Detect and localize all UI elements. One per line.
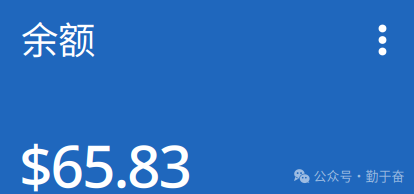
button[interactable]: More options [360,18,404,62]
staticText: 公众号·勤于奋 [313,166,404,184]
staticText: $65.83 [19,126,192,194]
staticText: 余额 [21,11,95,65]
